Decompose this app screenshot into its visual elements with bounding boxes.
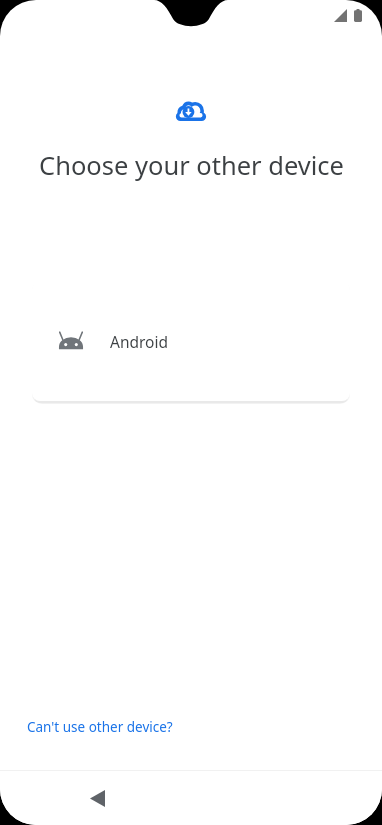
button[interactable]: Android bbox=[32, 282, 350, 401]
button[interactable]: Can't use other device? bbox=[27, 712, 173, 742]
staticText: Can't use other device? bbox=[27, 718, 173, 736]
staticText: Android bbox=[110, 331, 169, 352]
button[interactable]: Back bbox=[77, 778, 117, 818]
staticText: Choose your other device bbox=[39, 148, 344, 183]
other: Cloud download bbox=[174, 97, 208, 127]
